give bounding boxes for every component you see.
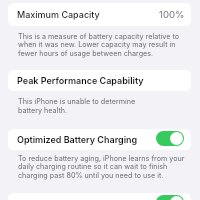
staticText: charging past 80% until you need to use … (18, 171, 197, 180)
button[interactable]: Clean Energy Charging (8, 193, 191, 200)
button[interactable]: Optimized Battery Charging toggle, on (156, 195, 184, 200)
button[interactable]: Optimized Battery Charging (8, 129, 191, 150)
button[interactable]: Optimized Battery Charging toggle, on (156, 131, 184, 146)
button[interactable]: Maximum Capacity (8, 3, 191, 26)
staticText: This is a measure of battery capacity re… (18, 32, 197, 41)
staticText: battery health. (18, 106, 197, 115)
staticText: daily charging routine so it can wait to… (18, 162, 197, 171)
staticText: To reduce battery aging, iPhone learns f… (18, 154, 197, 163)
staticText: Maximum Capacity (17, 9, 100, 20)
staticText: when it was new. Lower capacity may resu… (18, 40, 197, 49)
staticText: 100% (159, 9, 185, 21)
staticText: Peak Performance Capability (17, 75, 144, 86)
staticText: Optimized Battery Charging (17, 134, 138, 145)
staticText: fewer hours of usage between charges. (18, 49, 197, 58)
button[interactable]: Peak Performance Capability (8, 70, 191, 91)
staticText: This iPhone is unable to determine (18, 97, 197, 106)
